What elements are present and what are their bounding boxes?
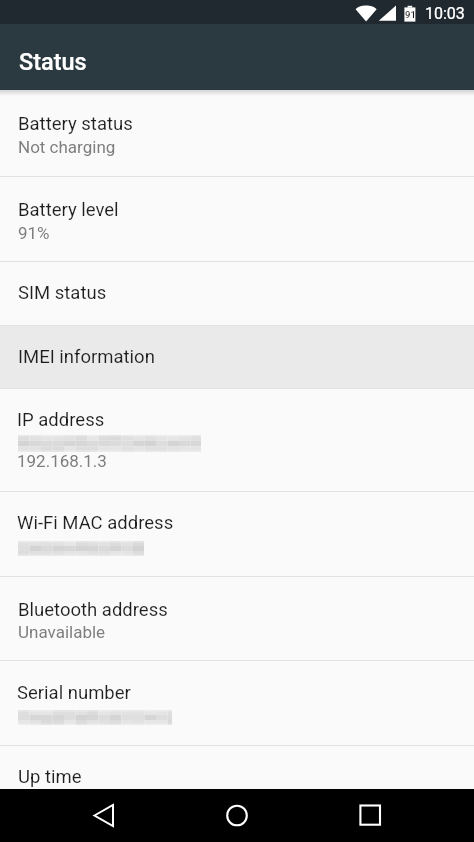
staticText: IMEI information <box>18 346 155 368</box>
button[interactable]: IMEI information <box>0 326 474 388</box>
button[interactable]: Home <box>207 789 267 842</box>
staticText: 192.168.1.3 <box>17 451 107 471</box>
button[interactable]: Recent apps <box>340 789 400 842</box>
button[interactable]: Bluetooth address <box>0 577 474 660</box>
button[interactable]: SIM status <box>0 262 474 325</box>
staticText: 91 <box>405 9 416 20</box>
staticText: Not charging <box>18 137 116 157</box>
button[interactable]: Wi-Fi MAC address <box>0 492 474 576</box>
staticText: 10:03 <box>425 4 465 23</box>
staticText: Status <box>19 48 87 76</box>
staticText: Unavailable <box>18 622 106 642</box>
staticText: Battery level <box>18 199 119 221</box>
staticText: Serial number <box>17 682 131 704</box>
staticText: Battery status <box>18 113 133 135</box>
button[interactable]: Battery status <box>0 90 474 176</box>
staticText: IP address <box>17 409 105 431</box>
staticText: Wi-Fi MAC address <box>17 512 174 534</box>
staticText: SIM status <box>18 282 107 304</box>
button[interactable]: Up time <box>0 746 474 789</box>
button[interactable]: Back <box>74 789 134 842</box>
button[interactable]: Serial number <box>0 661 474 745</box>
staticText: 91% <box>18 223 50 243</box>
button[interactable]: Battery level <box>0 177 474 261</box>
button[interactable]: IP address <box>0 389 474 491</box>
staticText: Up time <box>18 766 82 788</box>
staticText: Bluetooth address <box>18 599 168 621</box>
